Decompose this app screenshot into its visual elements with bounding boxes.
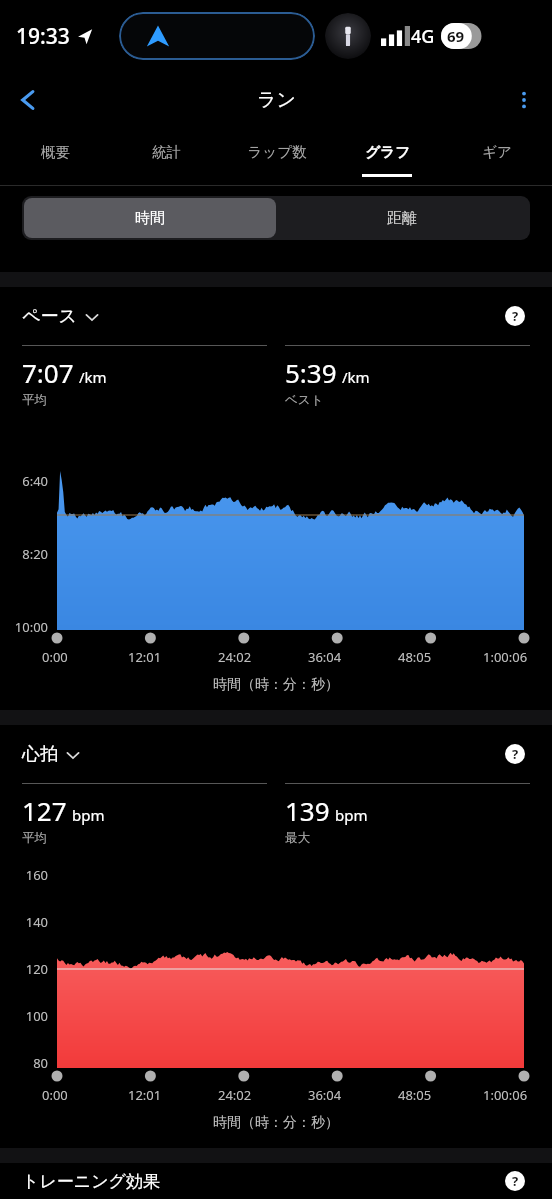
staticText: 120 bbox=[0, 960, 48, 978]
staticText: ペース bbox=[22, 305, 77, 328]
button[interactable]: 概要 bbox=[0, 127, 111, 185]
staticText: 0:00 bbox=[42, 1086, 68, 1104]
staticText: ベスト bbox=[285, 392, 324, 408]
staticText: 5:39 bbox=[285, 355, 337, 390]
button[interactable]: ギア bbox=[442, 127, 552, 185]
staticText: ラップ数 bbox=[247, 143, 307, 161]
button[interactable]: Help bbox=[500, 301, 530, 331]
staticText: 139 bbox=[285, 793, 330, 828]
staticText: 時間（時：分：秒） bbox=[0, 1114, 552, 1132]
staticText: /km bbox=[342, 367, 370, 387]
staticText: 時間 bbox=[135, 209, 165, 228]
staticText: 時間（時：分：秒） bbox=[0, 676, 552, 694]
staticText: 48:05 bbox=[398, 648, 432, 666]
staticText: 12:01 bbox=[128, 1086, 162, 1104]
staticText: 36:04 bbox=[308, 1086, 342, 1104]
button[interactable]: Back bbox=[0, 72, 56, 127]
staticText: 統計 bbox=[152, 143, 181, 161]
button[interactable]: More options bbox=[496, 72, 552, 127]
staticText: 19:33 bbox=[16, 22, 70, 51]
button[interactable]: ペース bbox=[22, 305, 99, 328]
staticText: 36:04 bbox=[308, 648, 342, 666]
staticText: 24:02 bbox=[218, 1086, 252, 1104]
staticText: 平均 bbox=[22, 830, 47, 846]
staticText: 12:01 bbox=[128, 648, 162, 666]
staticText: 心拍 bbox=[22, 743, 58, 766]
staticText: 100 bbox=[0, 1007, 48, 1025]
staticText: 平均 bbox=[22, 392, 47, 408]
staticText: bpm bbox=[72, 805, 105, 825]
staticText: /km bbox=[79, 367, 107, 387]
staticText: 69 bbox=[447, 26, 465, 46]
button[interactable]: Help bbox=[500, 739, 530, 769]
staticText: ? bbox=[512, 307, 519, 325]
button[interactable]: 統計 bbox=[111, 127, 222, 185]
staticText: ラン bbox=[257, 88, 296, 112]
staticText: 1:00:06 bbox=[483, 1086, 528, 1104]
staticText: 6:40 bbox=[0, 472, 48, 490]
staticText: 24:02 bbox=[218, 648, 252, 666]
staticText: 160 bbox=[0, 866, 48, 884]
staticText: 8:20 bbox=[0, 545, 48, 563]
staticText: 127 bbox=[22, 793, 67, 828]
staticText: ? bbox=[512, 1172, 519, 1190]
staticText: 10:00 bbox=[0, 618, 48, 636]
button[interactable]: Help bbox=[500, 1166, 530, 1196]
staticText: ギア bbox=[482, 143, 512, 161]
staticText: 48:05 bbox=[398, 1086, 432, 1104]
staticText: 80 bbox=[0, 1054, 48, 1072]
staticText: 0:00 bbox=[42, 648, 68, 666]
staticText: 7:07 bbox=[22, 355, 74, 390]
button[interactable]: 距離 bbox=[276, 198, 528, 238]
button[interactable]: 心拍 bbox=[22, 743, 80, 766]
staticText: トレーニング効果 bbox=[22, 1171, 160, 1192]
staticText: 距離 bbox=[387, 209, 417, 228]
staticText: 140 bbox=[0, 913, 48, 931]
staticText: bpm bbox=[335, 805, 368, 825]
staticText: 4G bbox=[411, 24, 435, 49]
button[interactable]: グラフ bbox=[332, 127, 442, 185]
staticText: 1:00:06 bbox=[483, 648, 528, 666]
staticText: 概要 bbox=[41, 143, 70, 161]
button[interactable]: 時間 bbox=[24, 198, 276, 238]
button[interactable]: トレーニング効果 bbox=[0, 1163, 552, 1199]
staticText: グラフ bbox=[365, 143, 410, 161]
staticText: 最大 bbox=[285, 830, 310, 846]
button[interactable]: ラップ数 bbox=[222, 127, 332, 185]
staticText: ? bbox=[512, 745, 519, 763]
